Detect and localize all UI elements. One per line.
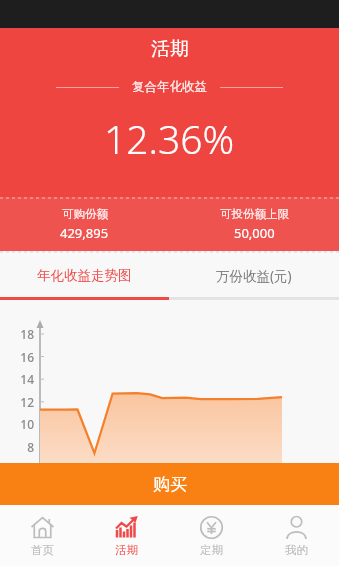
button[interactable]: 万份收益(元) — [169, 251, 339, 300]
staticText: 10 — [12, 416, 34, 432]
staticText: 429,895 — [60, 224, 109, 242]
staticText: 50,000 — [234, 224, 275, 242]
staticText: 我的 — [285, 543, 308, 557]
staticText: 定期 — [200, 543, 223, 557]
button[interactable]: 我的 — [254, 505, 339, 566]
staticText: 14 — [12, 371, 34, 387]
staticText: 首页 — [31, 543, 54, 557]
staticText: 复合年化收益 — [132, 79, 207, 95]
staticText: 购买 — [153, 474, 187, 495]
staticText: 12 — [12, 394, 34, 410]
staticText: 年化收益走势图 — [37, 267, 132, 284]
staticText: 活期 — [151, 37, 189, 61]
button[interactable]: 首页 — [0, 505, 84, 566]
button[interactable]: 定期 — [169, 505, 254, 566]
staticText: 8 — [12, 439, 34, 455]
staticText: 18 — [12, 326, 34, 342]
button[interactable]: 年化收益走势图 — [0, 251, 169, 300]
staticText: 16 — [12, 349, 34, 365]
staticText: 万份收益(元) — [216, 267, 292, 285]
staticText: 活期 — [115, 543, 138, 557]
button[interactable]: 活期 — [84, 505, 169, 566]
button[interactable]: 可投份额上限 — [169, 197, 339, 251]
button[interactable]: 可购份额 — [0, 197, 169, 251]
staticText: 12.36% — [104, 112, 235, 165]
staticText: 可投份额上限 — [220, 207, 289, 221]
staticText: 可购份额 — [62, 207, 108, 221]
button[interactable]: 购买 — [0, 463, 339, 505]
